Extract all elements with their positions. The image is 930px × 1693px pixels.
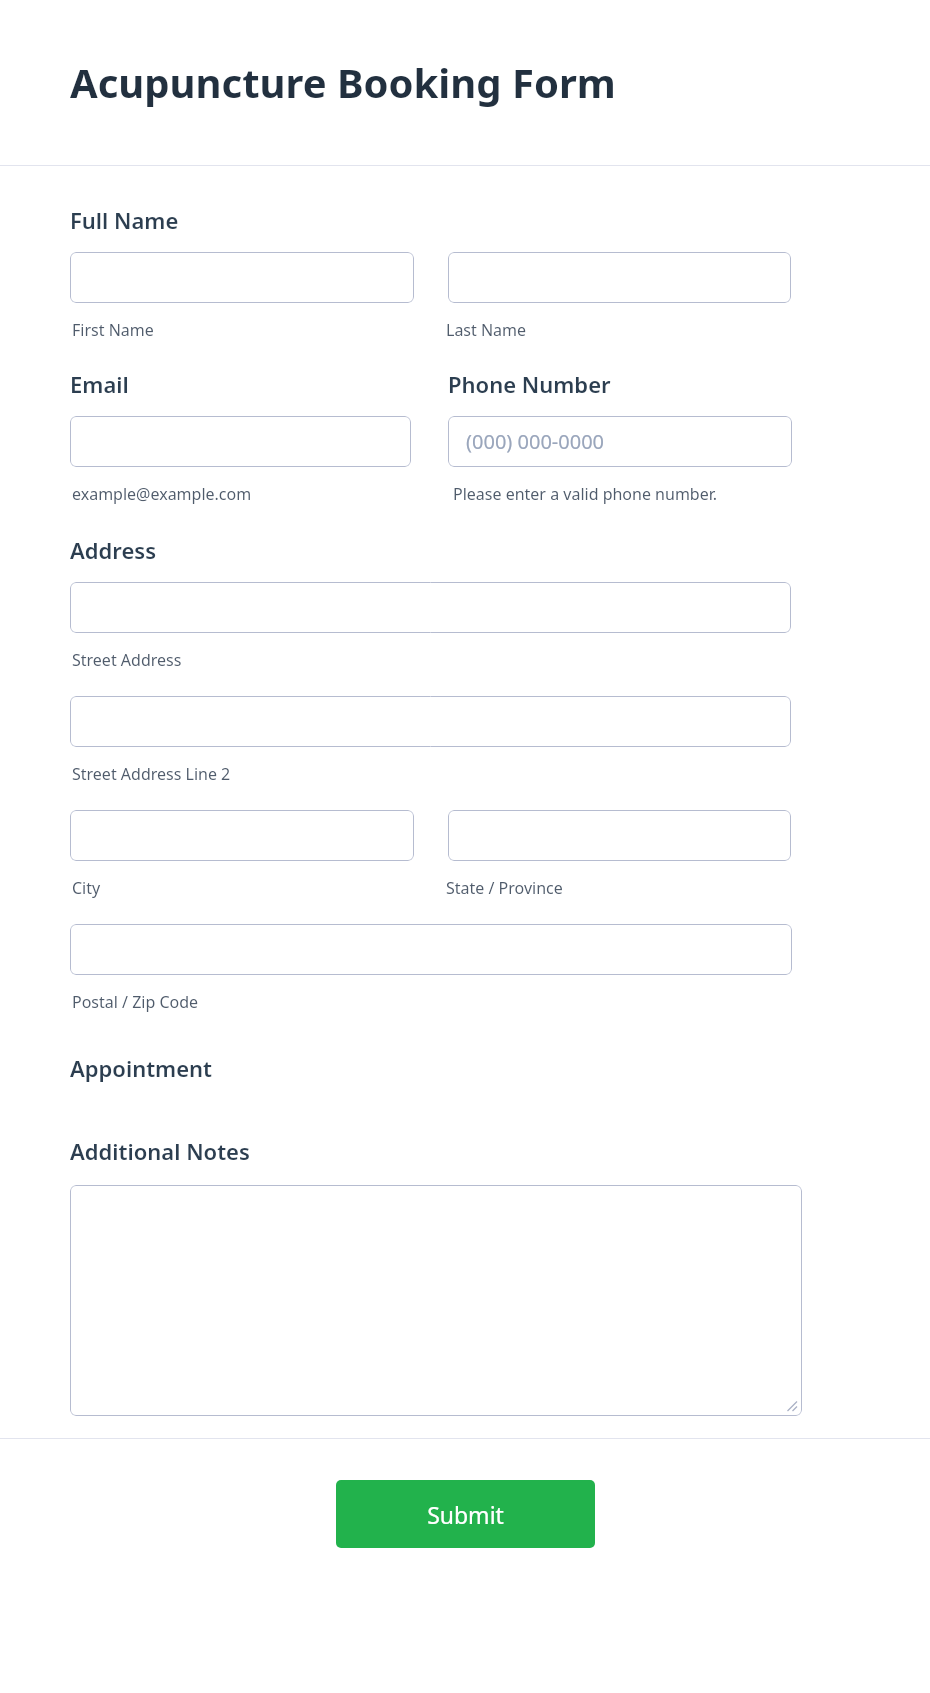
button[interactable]: Street Address Line 2 — [70, 696, 791, 747]
staticText: example@example.com — [72, 483, 453, 505]
staticText: (000) 000-0000 — [466, 428, 605, 455]
staticText: Postal / Zip Code — [72, 991, 199, 1013]
staticText: Acupuncture Booking Form — [70, 55, 616, 109]
button[interactable]: State / Province — [448, 810, 791, 861]
staticText: Full Name — [70, 205, 179, 235]
button[interactable]: Postal / Zip Code — [70, 924, 792, 975]
staticText: Street Address — [72, 649, 182, 671]
staticText: Submit — [427, 1499, 504, 1530]
button[interactable]: Street Address — [70, 582, 791, 633]
staticText: State / Province — [446, 877, 563, 899]
button[interactable]: Last Name — [448, 252, 791, 303]
staticText: City — [72, 877, 446, 899]
button[interactable]: Submit — [336, 1480, 595, 1548]
button[interactable]: Email — [70, 416, 411, 467]
button[interactable]: Additional Notes — [70, 1185, 802, 1416]
staticText: Email — [70, 369, 448, 399]
button[interactable]: Phone Number — [448, 416, 792, 467]
staticText: Appointment — [70, 1053, 213, 1083]
staticText: Please enter a valid phone number. — [453, 483, 718, 505]
staticText: First Name — [72, 319, 446, 341]
staticText: Additional Notes — [70, 1136, 250, 1166]
button[interactable]: First Name — [70, 252, 414, 303]
staticText: Last Name — [446, 319, 527, 341]
button[interactable]: City — [70, 810, 414, 861]
staticText: Phone Number — [448, 369, 611, 399]
staticText: Address — [70, 535, 156, 565]
staticText: Street Address Line 2 — [72, 763, 231, 785]
